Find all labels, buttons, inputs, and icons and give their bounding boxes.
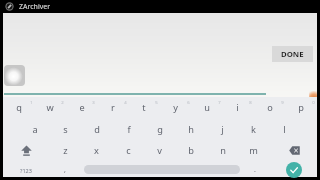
staticText: ?123 bbox=[20, 167, 32, 174]
button[interactable]: u bbox=[191, 97, 222, 117]
button[interactable]: Shift bbox=[3, 140, 50, 160]
button[interactable]: , bbox=[53, 160, 77, 180]
staticText: q bbox=[16, 101, 22, 114]
staticText: l bbox=[283, 123, 286, 136]
staticText: y bbox=[173, 101, 178, 114]
button[interactable]: z bbox=[50, 140, 81, 160]
staticText: 4 bbox=[124, 100, 127, 106]
button[interactable]: Backspace bbox=[279, 140, 310, 160]
staticText: 9 bbox=[281, 100, 284, 106]
button[interactable]: c bbox=[113, 140, 144, 160]
button[interactable]: m bbox=[238, 140, 269, 160]
button[interactable]: DONE bbox=[272, 46, 313, 62]
staticText: 3 bbox=[92, 100, 95, 106]
button[interactable]: w bbox=[34, 97, 65, 117]
button[interactable]: o bbox=[254, 97, 285, 117]
button[interactable]: p bbox=[285, 97, 316, 117]
staticText: n bbox=[220, 144, 226, 157]
button[interactable]: d bbox=[81, 119, 112, 139]
staticText: s bbox=[63, 123, 68, 136]
button[interactable]: f bbox=[113, 119, 144, 139]
staticText: c bbox=[126, 144, 131, 157]
staticText: x bbox=[94, 144, 99, 157]
button[interactable]: Enter bbox=[286, 162, 302, 178]
staticText: 2 bbox=[61, 100, 64, 106]
staticText: DONE bbox=[281, 49, 304, 60]
staticText: g bbox=[157, 123, 163, 136]
staticText: 7 bbox=[218, 100, 221, 106]
staticText: ZArchiver bbox=[19, 2, 51, 12]
staticText: j bbox=[221, 123, 224, 136]
button[interactable]: s bbox=[50, 119, 81, 139]
staticText: e bbox=[79, 101, 85, 114]
button[interactable]: y bbox=[160, 97, 191, 117]
staticText: o bbox=[267, 101, 273, 114]
button[interactable]: k bbox=[238, 119, 269, 139]
button[interactable]: q bbox=[3, 97, 34, 117]
staticText: z bbox=[63, 144, 68, 157]
button[interactable]: v bbox=[144, 140, 175, 160]
staticText: a bbox=[32, 123, 38, 136]
button[interactable]: l bbox=[269, 119, 300, 139]
button[interactable]: b bbox=[175, 140, 206, 160]
staticText: . bbox=[254, 165, 256, 175]
button[interactable]: ?123 bbox=[10, 160, 42, 180]
staticText: 6 bbox=[187, 100, 190, 106]
button[interactable]: a bbox=[19, 119, 50, 139]
staticText: d bbox=[94, 123, 100, 136]
staticText: i bbox=[236, 101, 239, 114]
button[interactable]: e bbox=[66, 97, 97, 117]
staticText: 0 bbox=[312, 100, 315, 106]
staticText: w bbox=[46, 101, 54, 114]
staticText: 5 bbox=[155, 100, 158, 106]
staticText: 8 bbox=[249, 100, 252, 106]
button[interactable]: . bbox=[243, 160, 267, 180]
staticText: f bbox=[127, 123, 131, 136]
staticText: m bbox=[249, 144, 258, 157]
button[interactable]: t bbox=[128, 97, 159, 117]
staticText: p bbox=[298, 101, 304, 114]
button[interactable]: r bbox=[97, 97, 128, 117]
button[interactable]: j bbox=[207, 119, 238, 139]
staticText: u bbox=[204, 101, 210, 114]
staticText: k bbox=[251, 123, 256, 136]
button[interactable]: x bbox=[81, 140, 112, 160]
staticText: h bbox=[188, 123, 194, 136]
staticText: 1 bbox=[30, 100, 33, 106]
staticText: , bbox=[64, 165, 66, 175]
button[interactable]: n bbox=[207, 140, 238, 160]
staticText: t bbox=[142, 101, 146, 114]
button[interactable]: Archive icon bbox=[4, 65, 25, 86]
button[interactable]: h bbox=[175, 119, 206, 139]
staticText: r bbox=[111, 101, 115, 114]
staticText: b bbox=[188, 144, 194, 157]
staticText: v bbox=[157, 144, 162, 157]
button[interactable]: g bbox=[144, 119, 175, 139]
button[interactable]: i bbox=[222, 97, 253, 117]
